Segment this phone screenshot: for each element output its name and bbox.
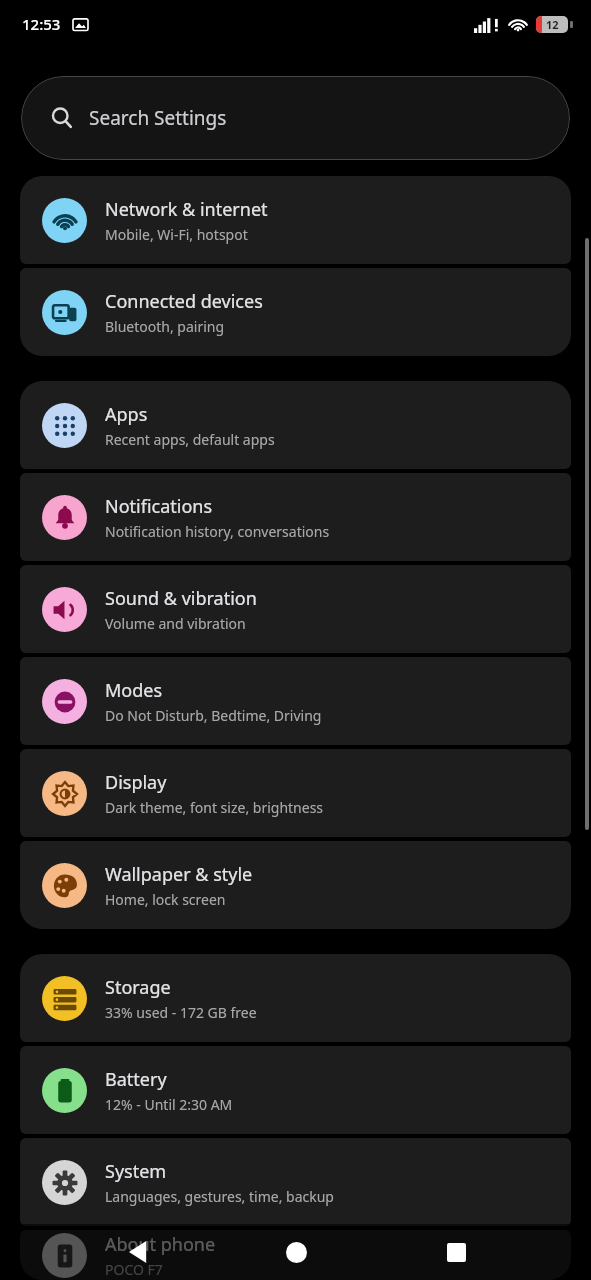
staticText: Display	[105, 770, 167, 795]
button[interactable]: Storage	[20, 954, 571, 1042]
button[interactable]: Network & internet	[20, 176, 571, 264]
staticText: Sound & vibration	[105, 586, 257, 611]
staticText: Apps	[105, 402, 148, 427]
staticText: Mobile, Wi-Fi, hotspot	[105, 225, 248, 244]
staticText: Languages, gestures, time, backup	[105, 1187, 334, 1206]
button[interactable]: Back	[118, 1230, 162, 1274]
staticText: Notification history, conversations	[105, 522, 330, 541]
staticText: Battery	[105, 1067, 167, 1092]
staticText: About phone	[105, 1232, 216, 1257]
button[interactable]: Modes	[20, 657, 571, 745]
button[interactable]: Notifications	[20, 473, 571, 561]
staticText: System	[105, 1159, 167, 1184]
staticText: POCO F7	[105, 1260, 163, 1279]
staticText: Modes	[105, 678, 163, 703]
staticText: Volume and vibration	[105, 614, 246, 633]
button[interactable]: Recent apps	[434, 1230, 478, 1274]
button[interactable]: Display	[20, 749, 571, 837]
staticText: Connected devices	[105, 289, 263, 314]
button[interactable]: About phone	[20, 1230, 571, 1280]
staticText: Storage	[105, 975, 171, 1000]
staticText: Notifications	[105, 494, 213, 519]
staticText: Home, lock screen	[105, 890, 226, 909]
button[interactable]: Apps	[20, 381, 571, 469]
staticText: Search Settings	[89, 105, 227, 131]
staticText: 12	[546, 17, 559, 32]
button[interactable]: Home	[274, 1230, 318, 1274]
button[interactable]: Sound & vibration	[20, 565, 571, 653]
staticText: Network & internet	[105, 197, 268, 222]
button[interactable]: Connected devices	[20, 268, 571, 356]
staticText: 12:53	[22, 14, 61, 34]
staticText: Recent apps, default apps	[105, 430, 275, 449]
button[interactable]: Wallpaper & style	[20, 841, 571, 929]
staticText: Do Not Disturb, Bedtime, Driving	[105, 706, 322, 725]
staticText: Dark theme, font size, brightness	[105, 798, 324, 817]
staticText: Bluetooth, pairing	[105, 317, 225, 336]
button[interactable]: Battery	[20, 1046, 571, 1134]
staticText: 12% - Until 2:30 AM	[105, 1095, 233, 1114]
staticText: Wallpaper & style	[105, 862, 253, 887]
button[interactable]: System	[20, 1138, 571, 1226]
button[interactable]: Search Settings	[21, 76, 570, 160]
staticText: 33% used - 172 GB free	[105, 1003, 257, 1022]
